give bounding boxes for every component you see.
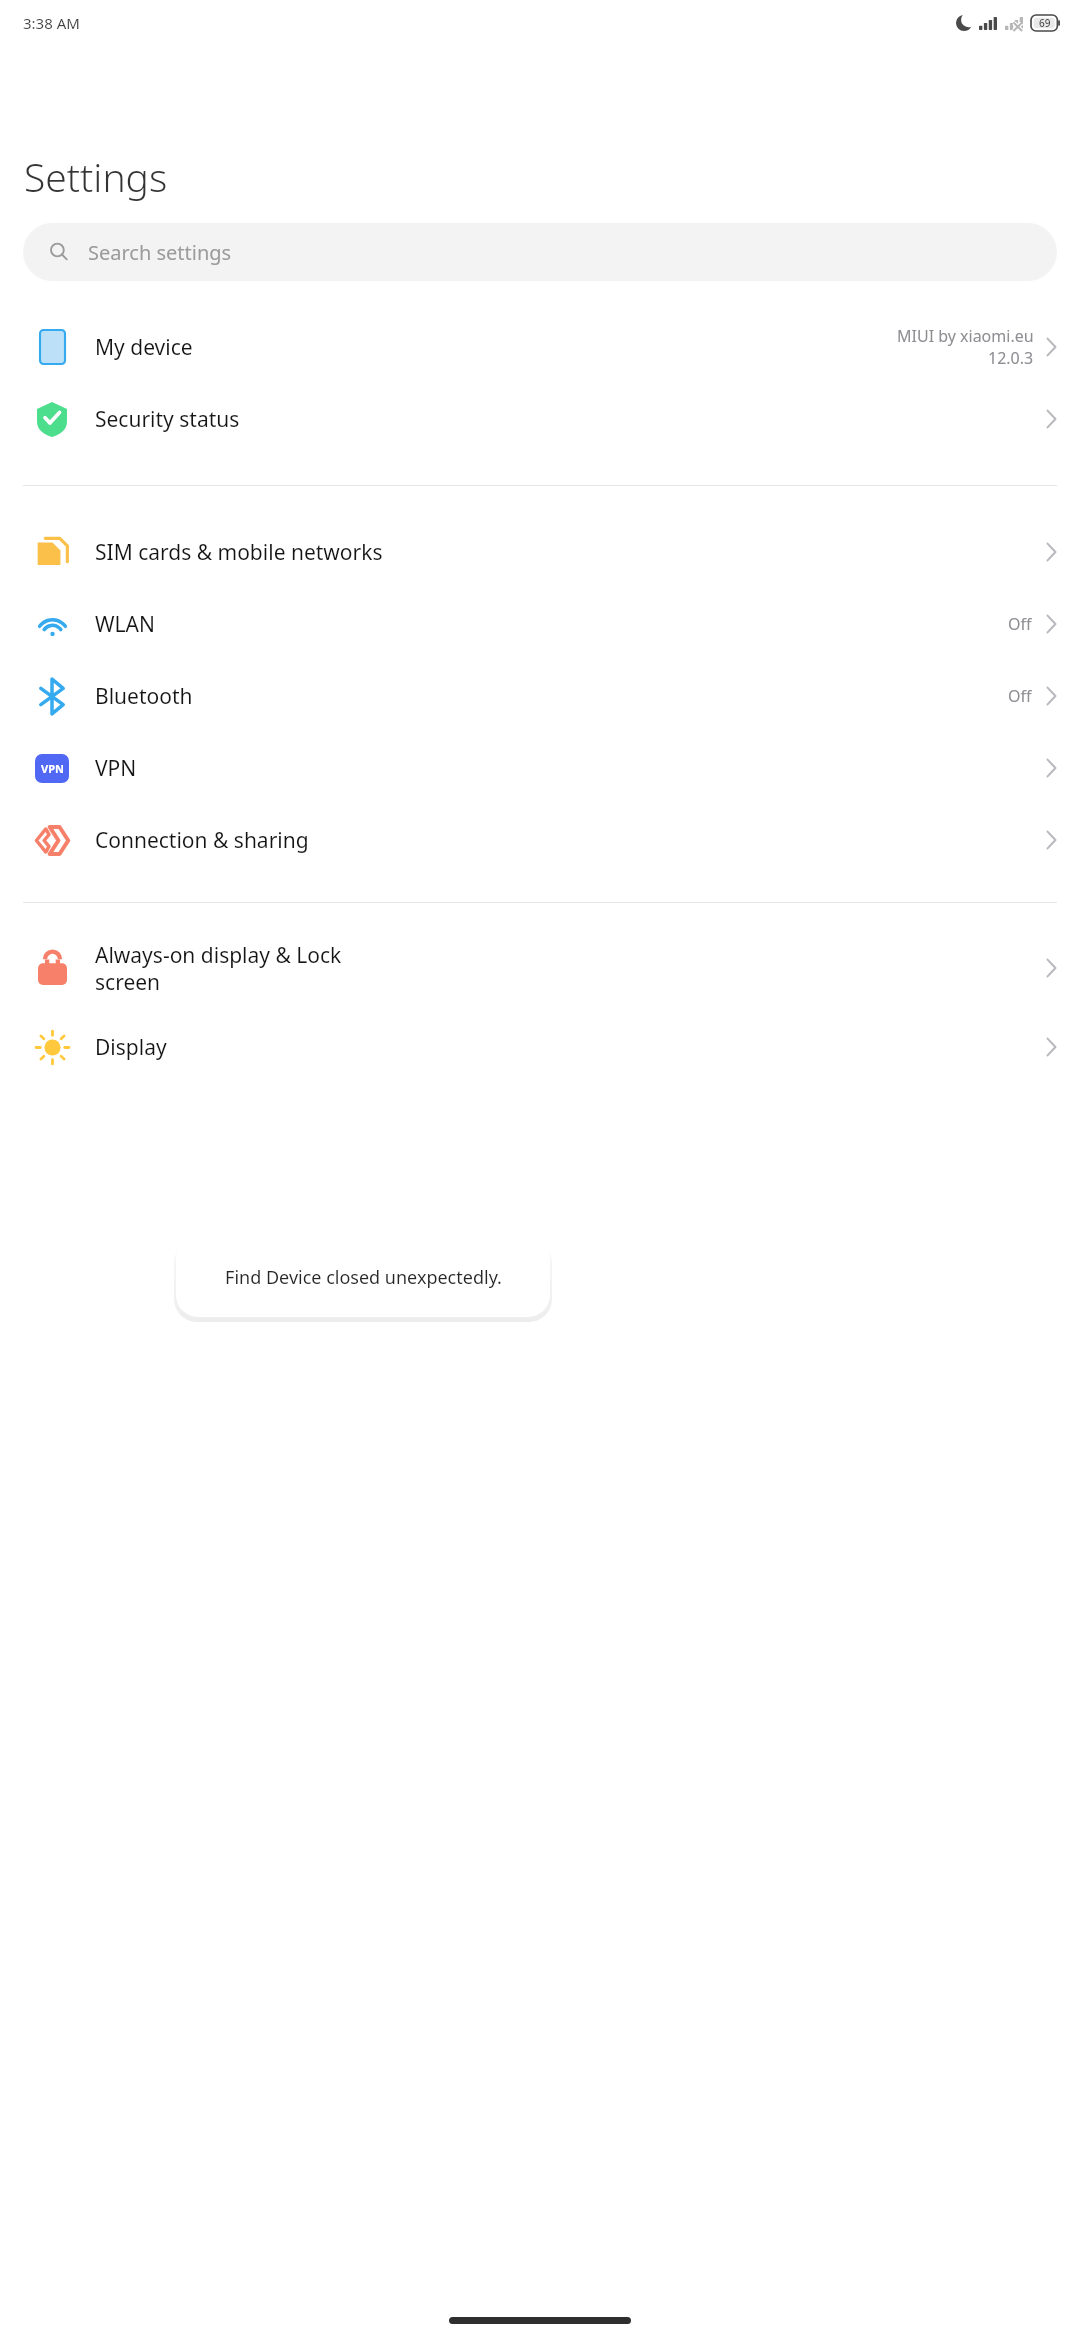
staticText: WLAN: [95, 610, 1008, 639]
staticText: SIM cards & mobile networks: [95, 538, 1046, 567]
button[interactable]: WLAN: [0, 588, 1080, 660]
staticText: Off: [1008, 613, 1032, 635]
button[interactable]: My device: [0, 311, 1080, 383]
button[interactable]: Always-on display & Lock screen: [0, 925, 1080, 1011]
staticText: Settings: [24, 150, 168, 203]
button[interactable]: Display: [0, 1011, 1080, 1083]
button[interactable]: Connection & sharing: [0, 804, 1080, 876]
staticText: Bluetooth: [95, 682, 1008, 711]
other: My device: [40, 330, 65, 364]
button[interactable]: Security status: [0, 383, 1080, 455]
staticText: 69: [1039, 16, 1051, 30]
staticText: Search settings: [88, 239, 232, 266]
staticText: Always-on display & Lock screen: [95, 941, 1046, 996]
staticText: Off: [1008, 685, 1032, 707]
staticText: 12.0.3: [988, 347, 1034, 369]
staticText: Connection & sharing: [95, 826, 1046, 855]
button[interactable]: Search settings: [23, 223, 1057, 281]
staticText: My device: [95, 333, 897, 362]
staticText: Find Device closed unexpectedly.: [225, 1265, 502, 1290]
staticText: Security status: [95, 405, 1046, 434]
button[interactable]: Bluetooth: [0, 660, 1080, 732]
button[interactable]: VPN: [0, 732, 1080, 804]
staticText: MIUI by xiaomi.eu: [897, 325, 1034, 347]
staticText: VPN: [95, 754, 1046, 783]
button[interactable]: SIM cards & mobile networks: [0, 516, 1080, 588]
staticText: Display: [95, 1033, 1046, 1062]
staticText: 3:38 AM: [23, 13, 80, 33]
staticText: VPN: [41, 761, 64, 776]
